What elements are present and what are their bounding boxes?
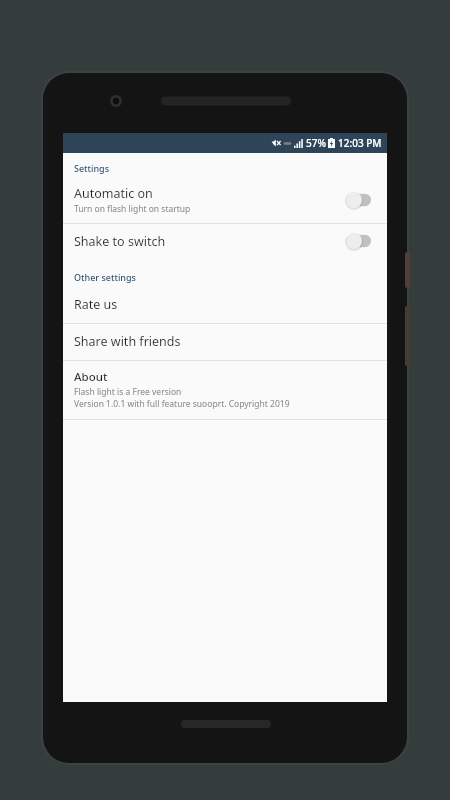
button[interactable]: Automatic on	[63, 178, 387, 223]
staticText: Share with friends	[74, 333, 181, 350]
button[interactable]: Rate us	[63, 287, 387, 323]
staticText: Turn on flash light on startup	[74, 203, 191, 215]
button[interactable]: Toggle setting	[343, 190, 377, 210]
button[interactable]: About	[63, 361, 387, 419]
button[interactable]: Toggle setting	[343, 231, 377, 251]
staticText: Rate us	[74, 296, 118, 313]
staticText: About	[74, 369, 108, 385]
staticText: Other settings	[74, 271, 136, 283]
staticText: Automatic on	[74, 185, 153, 202]
staticText: Flash light is a Free version	[74, 386, 182, 398]
staticText: Settings	[74, 162, 110, 174]
staticText: 57%	[306, 136, 326, 150]
staticText: Shake to switch	[74, 233, 166, 250]
staticText: 12:03 PM	[338, 136, 382, 150]
button[interactable]: Shake to switch	[63, 224, 387, 259]
button[interactable]: Share with friends	[63, 324, 387, 360]
staticText: Version 1.0.1 with full feature suooprt.…	[74, 398, 290, 410]
